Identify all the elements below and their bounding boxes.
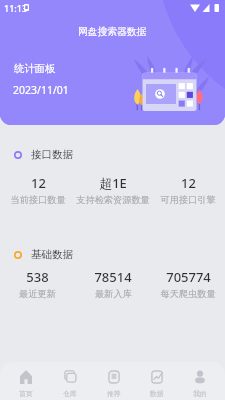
staticText: 接口数据 [31,148,73,161]
button[interactable]: Profile [178,365,221,398]
staticText: 538 [26,268,49,286]
staticText: 仓库 [63,389,77,398]
button[interactable]: Warehouse [48,365,92,398]
button[interactable]: Home [4,365,48,398]
staticText: 支持检索资源数量 [76,194,150,206]
staticText: 可用接口引擎 [160,194,216,206]
staticText: 12 [31,174,46,192]
staticText: 最新入库 [95,288,132,300]
staticText: 最近更新 [19,288,56,300]
staticText: 统计面板 [14,62,56,75]
staticText: 2023/11/01 [13,83,69,97]
button[interactable]: Data [135,365,178,398]
staticText: 705774 [166,268,211,286]
staticText: 基础数据 [31,248,73,261]
staticText: 12 [181,174,196,192]
staticText: 推荐 [107,389,121,398]
staticText: 网盘搜索器数据 [78,26,147,38]
button[interactable]: Recommend [92,365,135,398]
staticText: 11:13 [4,2,28,14]
staticText: 我的 [193,389,207,398]
staticText: 首页 [19,389,33,398]
staticText: 每天爬虫数量 [160,288,216,300]
staticText: 数据 [150,389,164,398]
staticText: 78514 [94,268,132,286]
staticText: 超1E [99,174,127,192]
staticText: 当前接口数量 [10,194,66,206]
